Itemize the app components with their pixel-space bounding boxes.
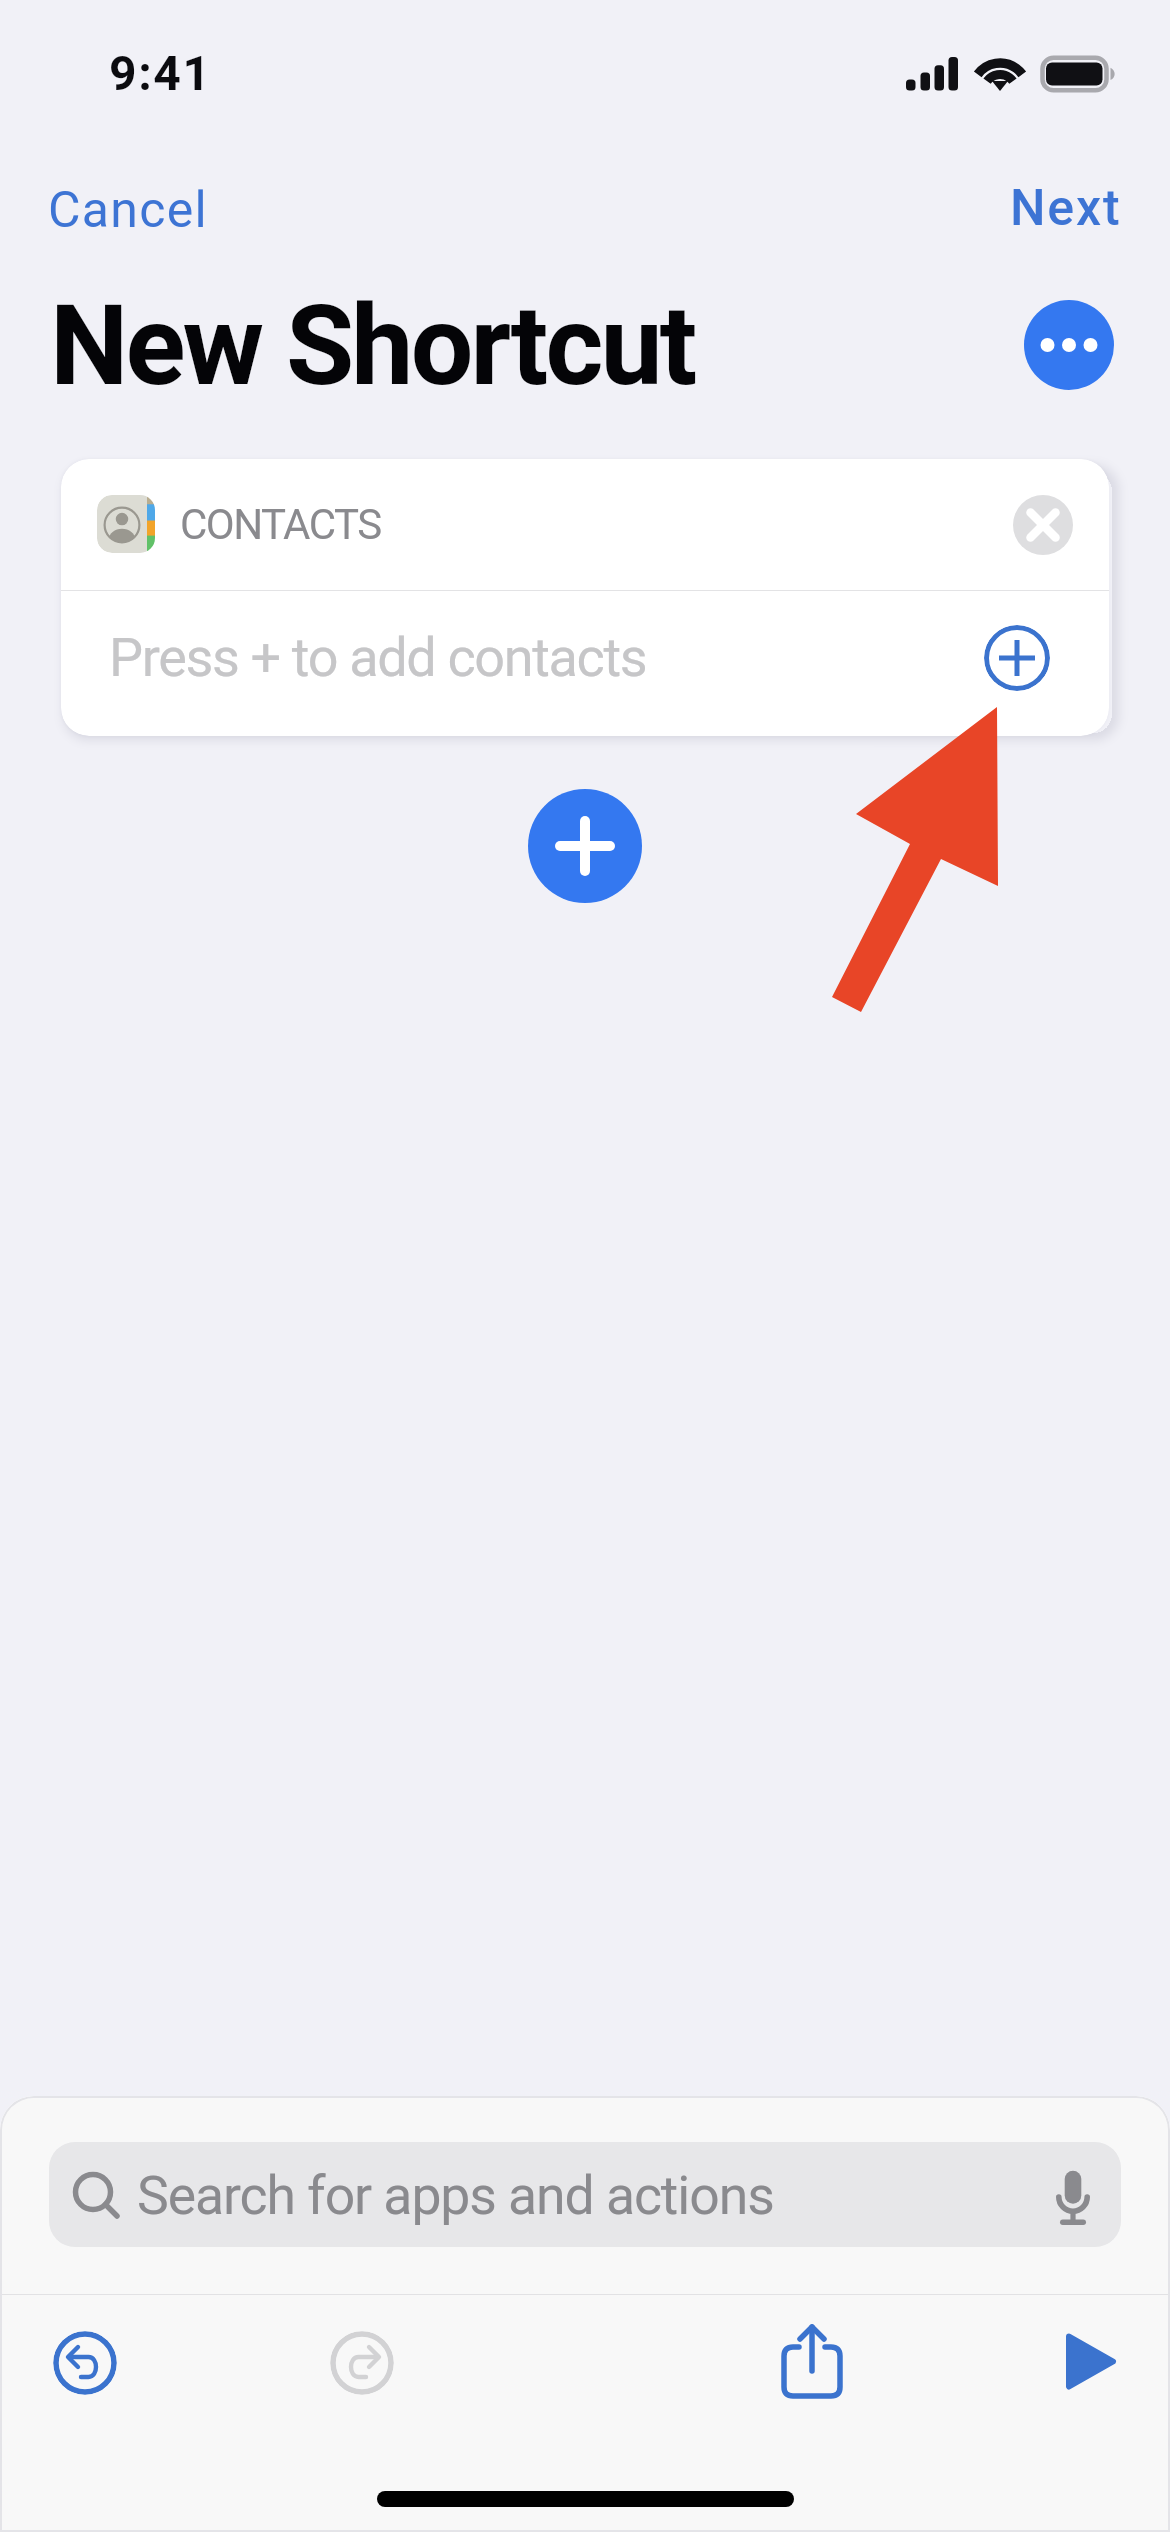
button[interactable]: Cancel	[27, 160, 229, 261]
button[interactable]: Run shortcut	[1063, 2328, 1123, 2388]
button[interactable]: Press + to add contacts	[61, 591, 1109, 736]
staticText: Cancel	[48, 181, 208, 240]
staticText: Search for apps and actions	[137, 2164, 774, 2227]
button[interactable]: CONTACTS	[61, 459, 1109, 590]
staticText: New Shortcut	[50, 281, 695, 411]
button[interactable]: Remove Contacts	[1013, 495, 1073, 555]
button[interactable]: More options	[1024, 300, 1114, 390]
button[interactable]: Next	[989, 158, 1143, 259]
button[interactable]: Add action	[528, 789, 642, 903]
staticText: CONTACTS	[180, 500, 381, 549]
button[interactable]: Voice search	[1037, 2159, 1109, 2231]
button[interactable]: Undo	[53, 2331, 117, 2395]
button[interactable]: Redo	[330, 2331, 394, 2395]
button[interactable]: Search for apps and actions	[49, 2142, 1121, 2247]
button[interactable]: Share	[782, 2310, 842, 2370]
staticText: 9:41	[109, 45, 212, 101]
staticText: Press + to add contacts	[109, 626, 647, 689]
button[interactable]: Add contact	[984, 625, 1050, 691]
staticText: Next	[1010, 179, 1122, 238]
